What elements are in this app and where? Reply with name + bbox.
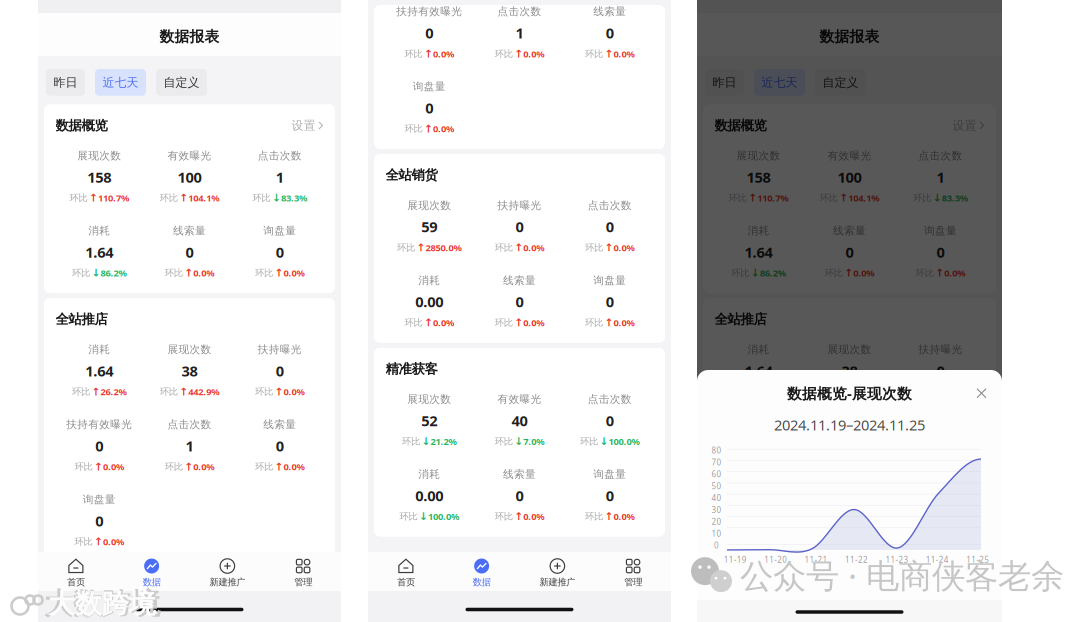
staticText: 158 — [87, 167, 111, 187]
staticText: ↓ — [421, 435, 430, 447]
staticText: 消耗 — [747, 343, 769, 356]
staticText: 环比 — [399, 511, 417, 522]
staticText: 110.7% — [757, 192, 788, 204]
staticText: 7.0% — [523, 435, 544, 448]
staticText: 0.0% — [103, 460, 124, 473]
staticText: 管理 — [294, 576, 312, 588]
staticText: 大数跨境 — [44, 586, 160, 622]
staticText: ↑ — [94, 461, 103, 473]
staticText: 扶持有效曝光 — [725, 418, 791, 431]
staticText: 设置 — [952, 118, 976, 133]
staticText: 1 — [936, 167, 944, 187]
button[interactable]: 近七天 — [754, 69, 805, 96]
staticText: 环比 — [580, 436, 598, 447]
staticText: 全站销货 — [385, 167, 437, 183]
staticText: ↓ — [91, 267, 100, 279]
staticText: ↓ — [272, 192, 281, 204]
button[interactable]: 管理 — [926, 550, 1002, 593]
button[interactable]: 自定义 — [815, 69, 866, 96]
staticText: ↑ — [844, 267, 853, 279]
staticText: 0 — [425, 23, 433, 43]
staticText: 询盘量 — [593, 468, 626, 481]
staticText: 0 — [276, 436, 284, 455]
staticText: 0.0% — [193, 460, 214, 473]
button[interactable]: 管理 — [265, 550, 341, 593]
button[interactable]: 数据 — [444, 550, 520, 593]
staticText: 100.0% — [609, 435, 640, 448]
staticText: 1 — [515, 23, 523, 43]
staticText: 0 — [606, 486, 614, 505]
staticText: 0.0% — [614, 510, 635, 523]
staticText: 点击次数 — [827, 418, 871, 431]
button[interactable]: 新建推广 — [849, 550, 926, 593]
button[interactable]: 设置 — [291, 118, 323, 133]
staticText: 52 — [421, 411, 437, 430]
staticText: ↑ — [514, 316, 523, 329]
staticText: ↑ — [94, 536, 103, 548]
button[interactable]: 数据 — [773, 550, 849, 593]
staticText: 环比 — [165, 267, 183, 279]
staticText: 0.0% — [523, 316, 544, 329]
button[interactable]: 自定义 — [156, 69, 207, 96]
staticText: ↓ — [933, 192, 942, 204]
button[interactable]: 设置 — [952, 118, 984, 133]
staticText: ↑ — [89, 192, 98, 204]
button[interactable]: 昨日 — [46, 69, 85, 96]
staticText: ↑ — [514, 241, 523, 254]
staticText: 442.9% — [848, 385, 879, 398]
staticText: 新建推广 — [870, 576, 906, 588]
button[interactable]: 首页 — [38, 550, 114, 593]
staticText: 83.3% — [281, 192, 307, 204]
staticText: 86.2% — [100, 267, 126, 279]
staticText: 0.0% — [284, 267, 305, 279]
staticText: 询盘量 — [263, 224, 296, 237]
staticText: 0.0% — [614, 241, 635, 254]
staticText: 环比 — [74, 536, 92, 547]
staticText: 0.0% — [853, 267, 874, 279]
staticText: 环比 — [820, 386, 838, 397]
button[interactable]: 近七天 — [95, 69, 146, 96]
button[interactable]: 关闭 — [972, 384, 991, 403]
staticText: 线索量 — [263, 418, 296, 431]
staticText: 环比 — [165, 461, 183, 472]
staticText: 80 — [711, 445, 721, 456]
staticText: 消耗 — [88, 343, 110, 356]
staticText: 线索量 — [503, 274, 536, 287]
staticText: 104.1% — [848, 192, 879, 204]
staticText: 11-21 — [805, 554, 828, 565]
staticText: 环比 — [585, 317, 603, 328]
button[interactable]: 昨日 — [705, 69, 744, 96]
button[interactable]: 首页 — [368, 550, 444, 593]
staticText: ↑ — [184, 461, 193, 473]
button[interactable]: 数据 — [114, 550, 190, 593]
staticText: 近七天 — [761, 75, 797, 90]
button[interactable]: 管理 — [595, 550, 671, 593]
staticText: 0 — [95, 436, 103, 455]
staticText: 0.0% — [523, 510, 544, 523]
staticText: 环比 — [585, 48, 603, 59]
staticText: 公众号 · 电商侠客老余 — [740, 553, 1064, 597]
staticText: 10 — [711, 528, 721, 539]
staticText: 100 — [837, 167, 861, 187]
staticText: ↑ — [748, 192, 757, 204]
staticText: ↓ — [751, 267, 760, 279]
staticText: 线索量 — [503, 468, 536, 481]
staticText: 442.9% — [188, 385, 219, 398]
staticText: 0.0% — [193, 267, 214, 279]
staticText: 精准获客 — [385, 361, 437, 377]
staticText: 0 — [714, 540, 719, 551]
staticText: 展现次数 — [77, 149, 121, 162]
staticText: ↑ — [514, 48, 523, 60]
button[interactable]: 首页 — [697, 550, 773, 593]
button[interactable]: 新建推广 — [189, 550, 265, 593]
button[interactable]: 新建推广 — [519, 550, 595, 593]
staticText: 数据 — [802, 576, 820, 588]
staticText: 首页 — [397, 576, 415, 588]
staticText: ↓ — [514, 435, 523, 447]
